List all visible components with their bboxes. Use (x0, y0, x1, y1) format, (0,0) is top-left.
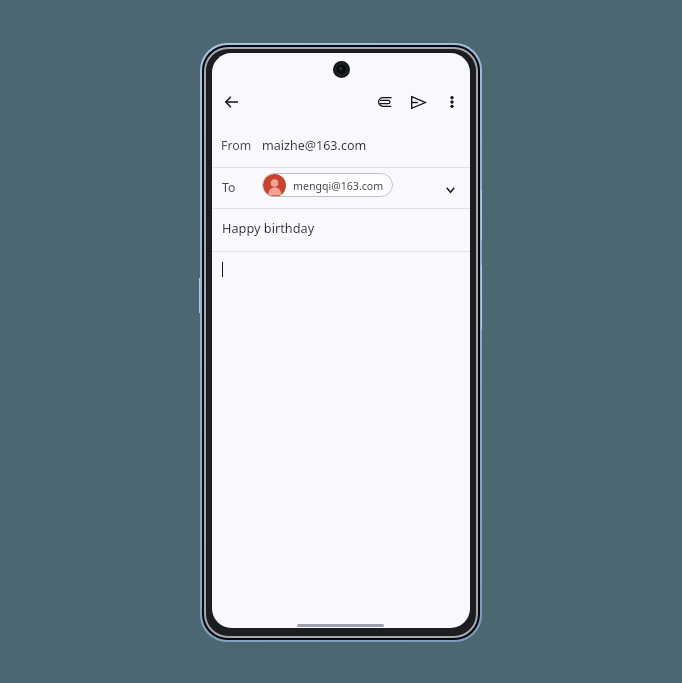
button[interactable]: mengqi@163.com (262, 173, 393, 197)
staticText: maizhe@163.com (262, 137, 367, 154)
button[interactable]: Send (396, 80, 440, 124)
staticText: mengqi@163.com (293, 179, 384, 193)
button[interactable]: Navigate up (212, 80, 253, 124)
button[interactable]: More options (430, 80, 470, 124)
button[interactable]: Expand recipients (436, 176, 464, 204)
button[interactable]: Compose email (212, 252, 470, 622)
button[interactable]: Happy birthday (212, 206, 470, 249)
staticText: Happy birthday (222, 219, 315, 236)
staticText: To (222, 179, 236, 196)
button[interactable]: Attach file (363, 80, 407, 124)
button[interactable]: To (212, 167, 470, 207)
staticText: From (221, 137, 252, 154)
button[interactable]: From (212, 126, 470, 164)
